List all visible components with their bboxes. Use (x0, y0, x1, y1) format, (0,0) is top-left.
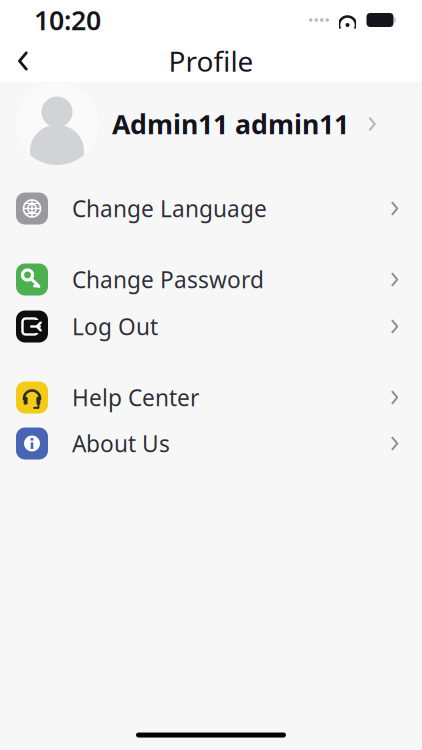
staticText: Change Password (72, 264, 264, 294)
staticText: Help Center (72, 382, 199, 412)
button[interactable]: Back (0, 40, 46, 82)
button[interactable]: About Us (0, 427, 422, 460)
button[interactable]: Log Out (0, 310, 422, 343)
staticText: About Us (72, 428, 170, 458)
button[interactable]: Admin11 admin11 (0, 82, 422, 166)
button[interactable]: Change Password (0, 263, 422, 296)
button[interactable]: Help Center (0, 381, 422, 414)
button[interactable]: Change Language (0, 192, 422, 225)
staticText: Admin11 admin11 (112, 106, 349, 142)
staticText: 10:20 (34, 2, 101, 38)
staticText: Profile (168, 42, 253, 80)
staticText: Log Out (72, 311, 158, 341)
staticText: Change Language (72, 193, 267, 223)
